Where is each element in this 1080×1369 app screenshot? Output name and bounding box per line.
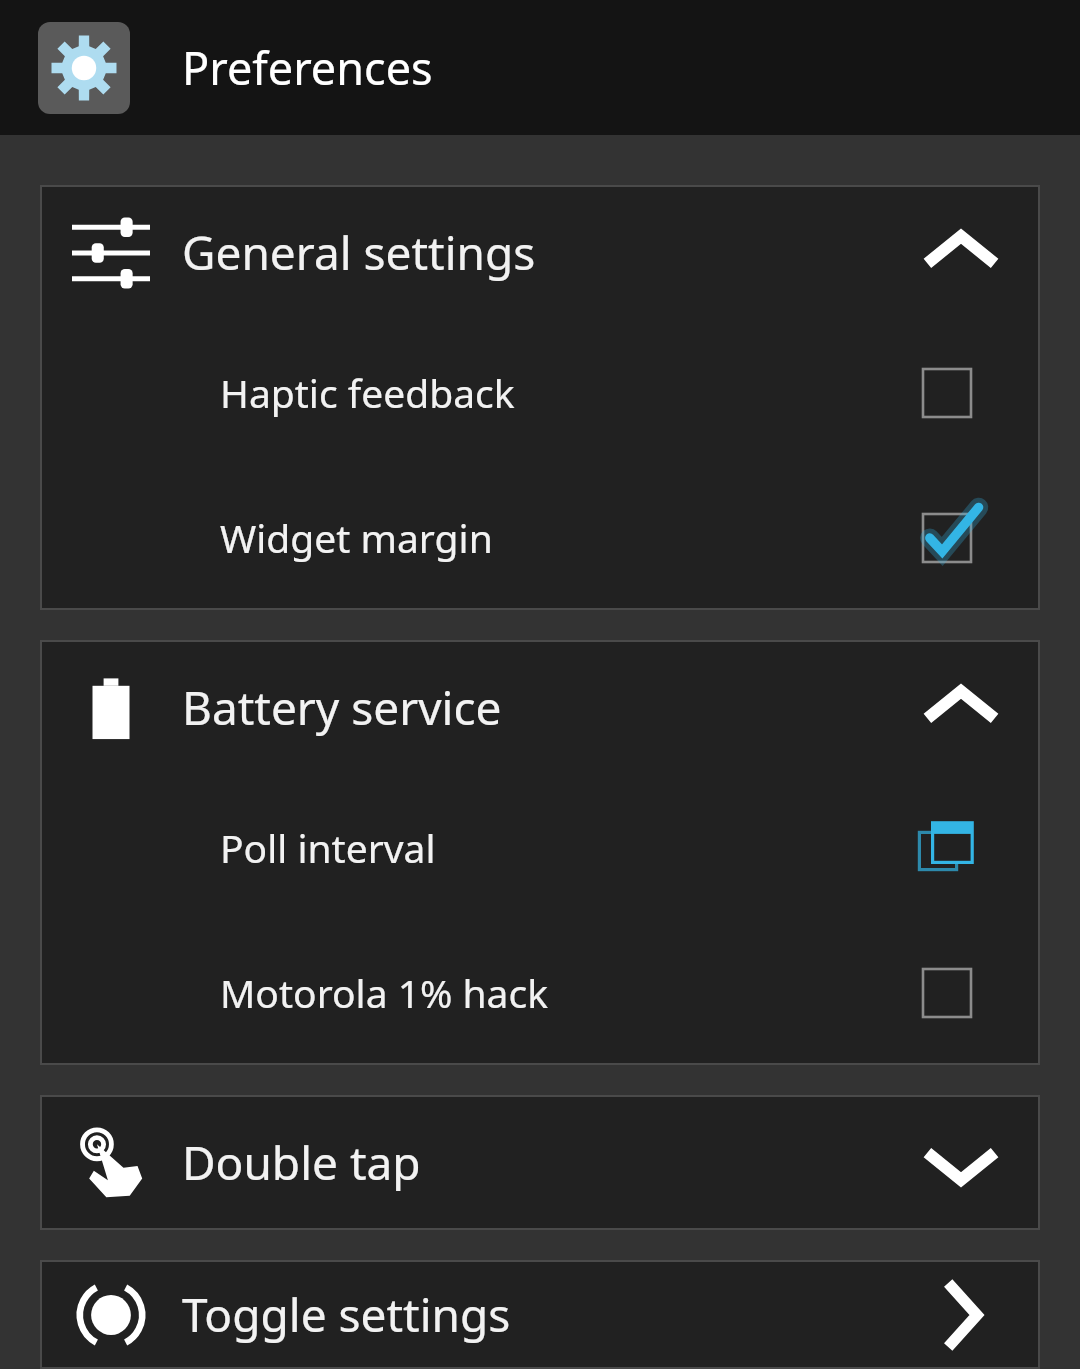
staticText: Toggle settings — [182, 1283, 916, 1346]
button[interactable]: Battery service — [40, 640, 1040, 775]
other: Open Toggle settings — [916, 1270, 1006, 1360]
button[interactable]: General settings — [40, 185, 1040, 320]
other: Expand Double tap — [916, 1118, 1006, 1208]
staticText: Battery service — [182, 676, 916, 739]
button[interactable]: Haptic feedback — [40, 320, 1040, 465]
staticText: Poll interval — [220, 821, 916, 874]
button[interactable]: Toggle settings — [40, 1260, 1040, 1369]
staticText: Motorola 1% hack — [220, 966, 916, 1019]
button[interactable]: Widget margin — [40, 465, 1040, 610]
staticText: Widget margin — [220, 511, 916, 564]
button[interactable]: Double tap — [40, 1095, 1040, 1230]
staticText: Haptic feedback — [220, 366, 916, 419]
button[interactable]: Motorola 1% hack — [40, 920, 1040, 1065]
button[interactable]: Preferences — [0, 0, 1080, 135]
staticText: Preferences — [182, 37, 433, 98]
staticText: General settings — [182, 221, 916, 284]
staticText: Double tap — [182, 1131, 916, 1194]
other: Collapse Battery service — [916, 663, 1006, 753]
other: Collapse General settings — [916, 208, 1006, 298]
button[interactable]: Poll interval — [40, 775, 1040, 920]
